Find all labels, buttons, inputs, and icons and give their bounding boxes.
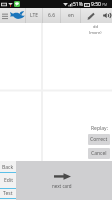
button[interactable]: Back: [0, 163, 16, 172]
staticText: 51%: [73, 1, 83, 8]
staticText: Cancel: [91, 150, 107, 157]
staticText: LTE: [30, 12, 39, 19]
button[interactable]: next card: [16, 161, 112, 200]
staticText: PM: [102, 2, 108, 7]
staticText: next card: [52, 183, 72, 189]
staticText: Edit: [4, 177, 13, 184]
staticText: Back: [2, 164, 14, 171]
staticText: (more): [89, 30, 102, 35]
staticText: dd: [93, 24, 98, 29]
button[interactable]: Edit: [81, 8, 101, 23]
button[interactable]: en: [61, 8, 80, 23]
button[interactable]: Edit: [0, 173, 16, 188]
staticText: Correct: [90, 136, 108, 143]
staticText: Replay:: [91, 125, 108, 132]
staticText: Test: [3, 190, 13, 197]
button[interactable]: 6.6: [43, 8, 60, 23]
button[interactable]: Menu: [0, 8, 9, 23]
staticText: 9:50: [91, 1, 101, 8]
staticText: 6.6: [48, 12, 56, 19]
staticText: en: [68, 12, 74, 19]
button[interactable]: Correct: [88, 134, 110, 145]
button[interactable]: Test: [0, 189, 16, 198]
button[interactable]: Sound: [101, 8, 112, 23]
button[interactable]: Cancel: [88, 148, 110, 159]
button[interactable]: LTE: [26, 8, 42, 23]
